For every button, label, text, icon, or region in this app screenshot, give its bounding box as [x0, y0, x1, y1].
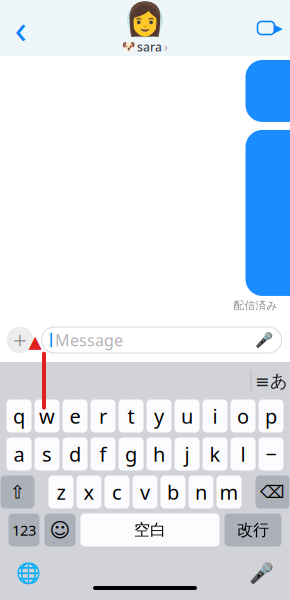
button[interactable]: x: [76, 475, 101, 508]
button[interactable]: Dictation: [243, 558, 279, 588]
button[interactable]: m: [216, 475, 241, 508]
button[interactable]: t: [118, 399, 143, 432]
button[interactable]: z: [48, 475, 73, 508]
staticText: a: [13, 441, 24, 467]
staticText: n: [195, 479, 207, 505]
staticText: o: [237, 403, 249, 429]
button[interactable]: Back: [0, 2, 42, 54]
staticText: ⇧: [9, 481, 25, 503]
button[interactable]: −: [258, 437, 283, 470]
staticText: 🐶: [122, 41, 135, 53]
staticText: Message: [55, 329, 123, 351]
button[interactable]: ⌫: [255, 475, 289, 508]
button[interactable]: p: [258, 399, 283, 432]
staticText: ‹: [14, 1, 26, 54]
button[interactable]: i: [202, 399, 227, 432]
button[interactable]: FaceTime video call: [247, 2, 290, 54]
staticText: b: [167, 479, 179, 505]
button[interactable]: u: [174, 399, 199, 432]
staticText: sara: [137, 39, 162, 55]
staticText: 123: [12, 520, 36, 540]
button[interactable]: e: [62, 399, 87, 432]
staticText: 配信済み: [233, 299, 277, 312]
button[interactable]: l: [230, 437, 255, 470]
button[interactable]: Emoji: [44, 513, 75, 546]
staticText: y: [154, 403, 164, 429]
staticText: i: [212, 403, 217, 429]
button[interactable]: c: [104, 475, 129, 508]
staticText: m: [219, 479, 238, 505]
staticText: 改行: [237, 520, 269, 540]
staticText: s: [42, 441, 52, 467]
staticText: d: [69, 441, 81, 467]
button[interactable]: g: [118, 437, 143, 470]
staticText: +: [13, 324, 27, 356]
button[interactable]: Message: [41, 327, 281, 353]
button[interactable]: 👩: [100, 0, 190, 56]
staticText: ≡あ: [255, 370, 288, 392]
staticText: 空白: [134, 520, 166, 540]
button[interactable]: j: [174, 437, 199, 470]
button[interactable]: y: [146, 399, 171, 432]
staticText: j: [184, 441, 189, 467]
button[interactable]: Change keyboard: [10, 558, 46, 588]
button[interactable]: Switch input mode: [251, 366, 290, 396]
button[interactable]: 123: [8, 513, 39, 546]
button[interactable]: d: [62, 437, 87, 470]
button[interactable]: q: [6, 399, 31, 432]
staticText: −: [265, 441, 276, 467]
staticText: 👩: [125, 1, 165, 38]
button[interactable]: 空白: [80, 513, 219, 546]
staticText: x: [83, 479, 94, 505]
button[interactable]: Add attachment: [6, 324, 33, 356]
staticText: c: [112, 479, 122, 505]
staticText: l: [240, 441, 245, 467]
staticText: ▲: [28, 332, 41, 352]
staticText: e: [69, 403, 80, 429]
button[interactable]: k: [202, 437, 227, 470]
staticText: 🌐: [16, 562, 41, 584]
staticText: p: [265, 403, 277, 429]
button[interactable]: f: [90, 437, 115, 470]
staticText: t: [127, 403, 134, 429]
staticText: r: [99, 403, 107, 429]
staticText: ⌫: [260, 482, 285, 502]
button[interactable]: ⇧: [0, 475, 34, 508]
button[interactable]: r: [90, 399, 115, 432]
button[interactable]: a: [6, 437, 31, 470]
staticText: v: [140, 479, 150, 505]
button[interactable]: b: [160, 475, 185, 508]
button[interactable]: v: [132, 475, 157, 508]
staticText: w: [39, 403, 55, 429]
staticText: u: [181, 403, 193, 429]
button[interactable]: o: [230, 399, 255, 432]
button[interactable]: 改行: [224, 513, 281, 546]
staticText: h: [153, 441, 165, 467]
staticText: z: [56, 479, 65, 505]
button[interactable]: h: [146, 437, 171, 470]
button[interactable]: s: [34, 437, 59, 470]
staticText: f: [99, 441, 106, 467]
staticText: g: [125, 441, 137, 467]
staticText: 🎤: [249, 562, 274, 584]
staticText: q: [13, 403, 25, 429]
staticText: 🎤: [254, 332, 272, 348]
staticText: ›: [164, 39, 168, 55]
button[interactable]: w: [34, 399, 59, 432]
staticText: ☺: [49, 519, 70, 541]
staticText: ▶: [273, 21, 282, 35]
button[interactable]: n: [188, 475, 213, 508]
staticText: k: [209, 441, 220, 467]
